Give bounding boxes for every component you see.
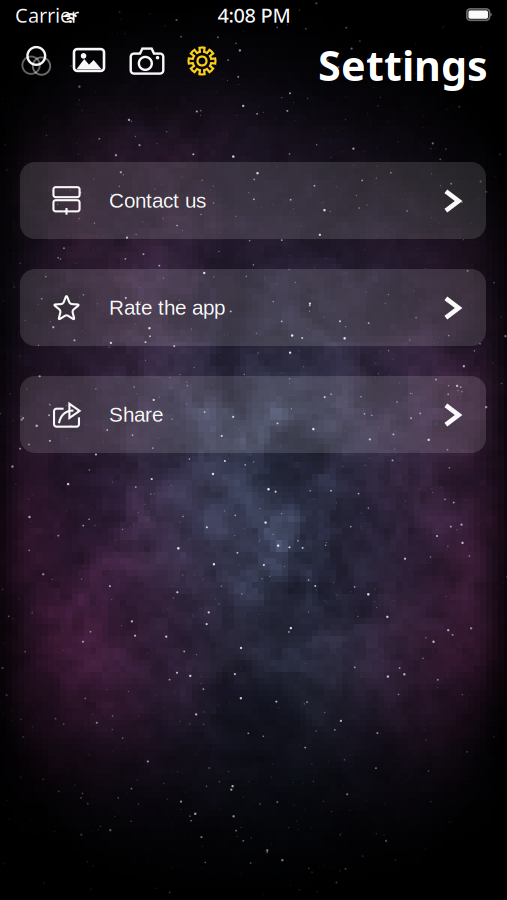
button[interactable]: Photos	[0, 0, 38, 38]
button[interactable]: Contact us	[20, 162, 486, 239]
button[interactable]: Rate the app	[20, 269, 486, 346]
staticText: Carrier	[15, 2, 79, 28]
staticText: Share	[109, 403, 163, 426]
button[interactable]: Settings	[0, 0, 36, 36]
button[interactable]: Filters	[0, 0, 36, 36]
staticText: Contact us	[109, 189, 206, 212]
button[interactable]: Camera	[0, 0, 40, 40]
staticText: Rate the app	[109, 296, 225, 319]
staticText: 4:08 PM	[217, 2, 290, 28]
staticText: Settings	[318, 38, 488, 92]
button[interactable]: Share	[20, 376, 486, 453]
